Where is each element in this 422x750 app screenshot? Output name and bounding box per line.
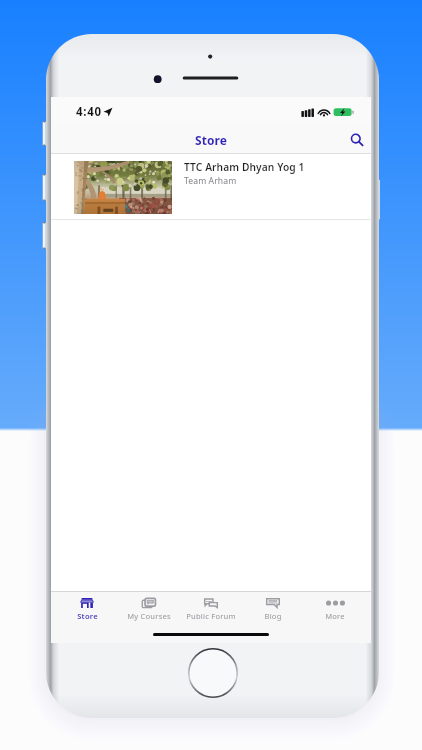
staticText: TTC Arham Dhyan Yog 1 xyxy=(184,160,305,174)
staticText: Store xyxy=(77,611,98,621)
button[interactable]: TTC Arham Dhyan Yog 1 xyxy=(51,154,371,220)
staticText: Store xyxy=(195,132,228,148)
staticText: Public Forum xyxy=(186,611,236,621)
staticText: Team Arham xyxy=(184,175,237,187)
button[interactable]: Blog xyxy=(242,594,304,630)
button[interactable]: My Courses xyxy=(118,594,180,630)
staticText: More xyxy=(325,611,345,621)
button[interactable]: Public Forum xyxy=(180,594,242,630)
button[interactable]: More xyxy=(304,594,366,630)
button[interactable]: Search xyxy=(343,126,371,154)
button[interactable]: Store xyxy=(56,594,118,630)
staticText: My Courses xyxy=(127,611,171,621)
staticText: Blog xyxy=(264,611,282,621)
staticText: 4:40 xyxy=(76,104,102,120)
